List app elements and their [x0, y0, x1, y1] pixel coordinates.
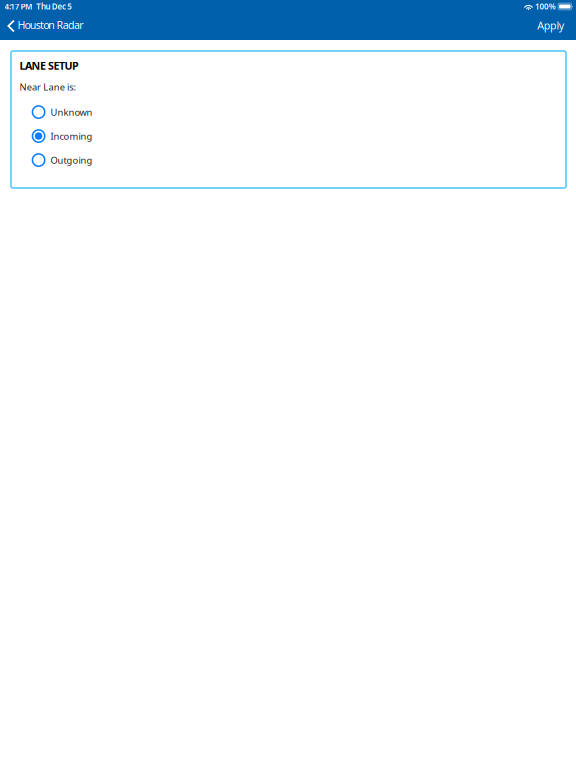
staticText: Apply	[537, 18, 564, 32]
staticText: 4:17 PM	[5, 1, 32, 12]
staticText: Near Lane is:	[20, 81, 76, 93]
button[interactable]: Houston Radar	[0, 13, 83, 40]
staticText: Houston Radar	[17, 18, 83, 32]
button[interactable]: Unknown	[32, 100, 566, 124]
staticText: 100%	[535, 1, 556, 12]
button[interactable]: Outgoing	[32, 148, 566, 172]
button[interactable]: Apply	[537, 13, 576, 40]
staticText: Incoming	[50, 130, 92, 142]
staticText: Outgoing	[50, 154, 92, 166]
staticText: LANE SETUP	[20, 58, 79, 73]
button[interactable]: Incoming	[32, 124, 566, 148]
staticText: Thu Dec 5	[36, 1, 72, 12]
staticText: Unknown	[50, 106, 92, 118]
